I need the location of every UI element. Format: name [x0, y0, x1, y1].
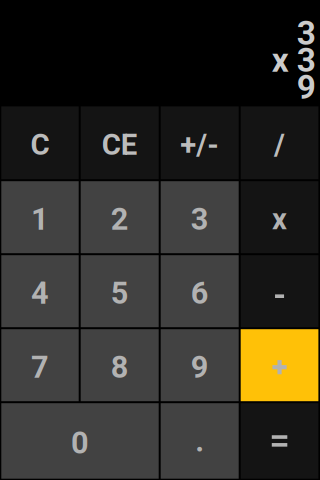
button[interactable]: . [161, 403, 239, 479]
staticText: 9 [297, 68, 316, 107]
button[interactable]: Equals [241, 403, 318, 479]
staticText: 6 [191, 275, 209, 311]
staticText: 0 [71, 425, 89, 461]
button[interactable]: CE [81, 106, 159, 179]
staticText: 9 [191, 349, 209, 385]
button[interactable]: 9 [161, 329, 239, 401]
button[interactable]: C [1, 106, 79, 179]
button[interactable]: 3 [161, 181, 239, 253]
staticText: x [272, 41, 289, 80]
button[interactable]: Plus [241, 329, 318, 401]
button[interactable]: Minus [241, 255, 318, 327]
button[interactable]: 2 [81, 181, 159, 253]
staticText: 3 [297, 14, 316, 53]
staticText: / [274, 128, 285, 162]
button[interactable]: x [241, 181, 318, 253]
staticText: 8 [111, 349, 129, 385]
button[interactable]: 5 [81, 255, 159, 327]
staticText: 2 [111, 201, 129, 237]
staticText: x [272, 202, 287, 236]
staticText: 3 [191, 201, 209, 237]
staticText: 5 [111, 275, 129, 311]
button[interactable]: 7 [1, 329, 79, 401]
button[interactable]: / [241, 106, 318, 179]
button[interactable]: 8 [81, 329, 159, 401]
staticText: 7 [31, 349, 49, 385]
staticText: 4 [31, 275, 49, 311]
staticText: CE [102, 128, 138, 162]
staticText: 1 [31, 201, 49, 237]
button[interactable]: 1 [1, 181, 79, 253]
staticText: +/- [180, 128, 219, 162]
staticText: C [30, 128, 49, 162]
button[interactable]: +/- [161, 106, 239, 179]
staticText: . [195, 423, 204, 459]
button[interactable]: 4 [1, 255, 79, 327]
button[interactable]: 6 [161, 255, 239, 327]
button[interactable]: 0 [1, 403, 159, 479]
staticText: 3 [297, 41, 316, 80]
